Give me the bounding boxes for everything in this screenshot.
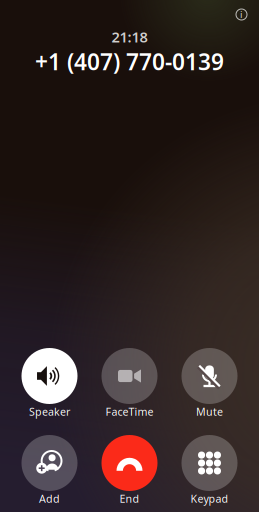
button[interactable]: End <box>89 435 169 506</box>
staticText: Keypad <box>190 491 228 506</box>
staticText: 21:18 <box>111 27 147 46</box>
button[interactable]: Keypad <box>169 435 249 506</box>
staticText: Speaker <box>29 404 70 419</box>
staticText: Add <box>39 491 60 506</box>
button[interactable]: Mute <box>169 348 249 419</box>
button[interactable]: Speaker <box>9 348 89 419</box>
button[interactable]: Call details <box>229 2 254 27</box>
button[interactable]: FaceTime <box>89 348 169 419</box>
staticText: End <box>119 491 139 506</box>
staticText: i <box>240 8 243 21</box>
staticText: Mute <box>196 404 223 419</box>
staticText: FaceTime <box>105 404 153 419</box>
button[interactable]: Add <box>9 435 89 506</box>
staticText: +1 (407) 770-0139 <box>35 46 224 77</box>
